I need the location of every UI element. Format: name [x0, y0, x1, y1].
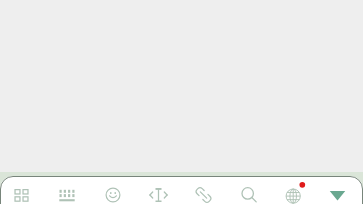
button[interactable]: Insert link	[183, 176, 225, 204]
button[interactable]: Apps	[1, 176, 43, 204]
button[interactable]: Collapse toolbar	[317, 176, 359, 204]
button[interactable]: Translate	[273, 176, 315, 204]
button[interactable]: Keyboard	[46, 176, 88, 204]
button[interactable]: Search	[229, 176, 271, 204]
button[interactable]: Text formatting	[138, 176, 180, 204]
button[interactable]: Emoji	[92, 176, 134, 204]
